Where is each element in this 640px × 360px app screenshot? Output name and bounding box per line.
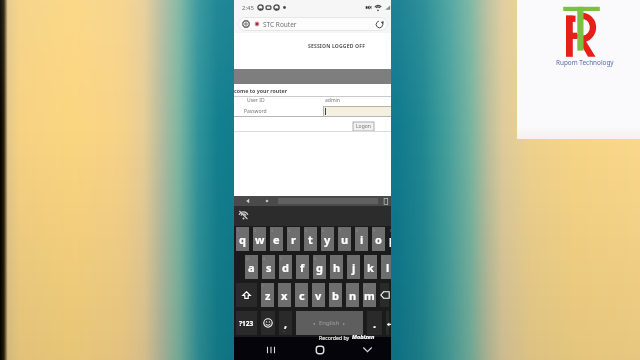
button[interactable]: _ (296, 255, 309, 279)
staticText: s (266, 260, 272, 275)
button[interactable]: ; (329, 283, 342, 307)
staticText: 1 (237, 228, 240, 233)
button[interactable]: 7 (338, 227, 351, 251)
button[interactable]: " (278, 283, 291, 307)
button[interactable]: & (313, 255, 326, 279)
staticText: , (284, 316, 288, 331)
staticText: Logon (356, 123, 371, 130)
staticText: . (373, 316, 377, 331)
button[interactable]: 6 (321, 227, 334, 251)
staticText: Mobizen (352, 333, 375, 341)
button[interactable]: $ (279, 255, 292, 279)
staticText: ? (364, 284, 366, 289)
button[interactable]: @ (245, 255, 258, 279)
button[interactable]: Enter (386, 311, 389, 335)
staticText: 4 (288, 228, 291, 233)
staticText: ; (330, 284, 331, 289)
staticText: h (333, 260, 341, 275)
staticText: k (367, 260, 374, 275)
staticText: 3 (271, 228, 274, 233)
button[interactable]: ? (363, 283, 376, 307)
button[interactable]: 8 (355, 227, 368, 251)
button[interactable]: ' (295, 283, 308, 307)
staticText: ◂ (313, 321, 316, 326)
staticText: j (352, 260, 356, 275)
button[interactable]: ◂ (296, 311, 363, 335)
staticText: 5 (305, 228, 308, 233)
staticText: u (341, 232, 349, 247)
staticText: Rupom Technology (556, 58, 614, 67)
other: Site information (242, 20, 250, 28)
staticText: English (319, 319, 340, 327)
staticText: 8 (356, 228, 359, 233)
button[interactable]: ! (346, 283, 359, 307)
staticText: come to your router (234, 87, 288, 94)
staticText: ! (347, 284, 348, 289)
staticText: r (291, 232, 296, 247)
other: Keyboard settings (238, 210, 249, 221)
staticText: SESSION LOGGED OFF (308, 43, 366, 50)
staticText: d (282, 260, 289, 275)
staticText: c (299, 288, 305, 303)
staticText: ?123 (239, 319, 254, 328)
staticText: g (316, 260, 323, 275)
button[interactable]: 1 (236, 227, 249, 251)
staticText: " (279, 284, 281, 289)
staticText: _ (283, 327, 285, 332)
button[interactable]: # (262, 255, 275, 279)
staticText: Password (244, 108, 267, 115)
staticText: @ (246, 256, 250, 261)
button[interactable]: 2 (253, 227, 266, 251)
button[interactable]: Home (309, 339, 330, 360)
staticText: f (300, 260, 305, 275)
button[interactable]: 4 (287, 227, 300, 251)
staticText: $ (280, 256, 283, 261)
staticText: & (314, 256, 317, 261)
button[interactable]: * (261, 283, 274, 307)
staticText: i (360, 232, 364, 247)
staticText: # (263, 256, 266, 261)
staticText: q (239, 232, 246, 247)
button[interactable] (323, 106, 391, 116)
button[interactable]: 5 (304, 227, 317, 251)
button[interactable]: Shift (236, 283, 257, 307)
other: Reload page (375, 20, 384, 29)
button[interactable]: + (347, 255, 360, 279)
staticText: * (262, 284, 264, 289)
button[interactable]: . (367, 311, 382, 335)
staticText: b (332, 288, 339, 303)
staticText: n (349, 288, 357, 303)
button[interactable]: ( (364, 255, 377, 279)
button[interactable]: Hide keyboard (357, 339, 378, 360)
button[interactable]: Site information (238, 17, 388, 31)
staticText: STC Router (263, 20, 297, 29)
other: Previous field (245, 198, 251, 204)
staticText: a (248, 260, 255, 275)
staticText: y (324, 232, 331, 247)
staticText: Recorded by (319, 334, 350, 341)
button[interactable]: 9 (372, 227, 385, 251)
button[interactable]: Recent apps (260, 339, 281, 360)
button[interactable]: : (312, 283, 325, 307)
staticText: ' (296, 284, 297, 289)
staticText: + (348, 256, 351, 261)
button[interactable]: Emoji (261, 311, 275, 335)
button[interactable]: ?123 (236, 311, 257, 335)
staticText: ▸ (343, 321, 346, 326)
staticText: l (386, 260, 390, 275)
button[interactable]: - (330, 255, 343, 279)
staticText: User ID (247, 97, 265, 104)
button[interactable]: Backspace (380, 283, 389, 307)
staticText: ( (365, 256, 367, 261)
staticText: e (273, 232, 280, 247)
staticText: o (375, 232, 382, 247)
button[interactable]: ) (381, 255, 391, 279)
button[interactable]: Logon (353, 122, 374, 131)
staticText: ) (382, 256, 384, 261)
button[interactable]: , (279, 311, 292, 335)
staticText: x (281, 288, 288, 303)
button[interactable]: 3 (270, 227, 283, 251)
